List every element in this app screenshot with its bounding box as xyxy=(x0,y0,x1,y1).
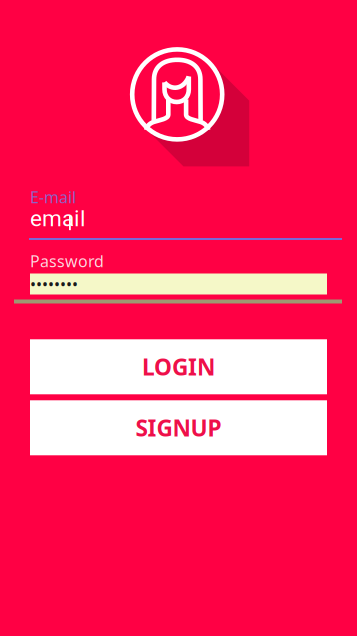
staticText: LOGIN xyxy=(142,352,215,382)
button[interactable]: LOGIN xyxy=(30,339,327,394)
staticText: Password xyxy=(30,250,104,272)
staticText: email xyxy=(30,205,86,232)
staticText: E-mail xyxy=(30,186,76,208)
staticText: •••••••• xyxy=(30,273,78,295)
staticText: SIGNUP xyxy=(135,413,221,443)
button[interactable]: SIGNUP xyxy=(30,400,327,455)
